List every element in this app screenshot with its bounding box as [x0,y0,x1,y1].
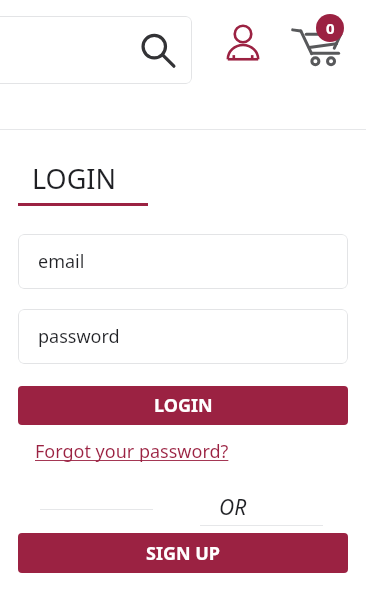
staticText: password [38,324,120,349]
button[interactable]: Account [220,22,266,68]
staticText: LOGIN [154,393,213,418]
button[interactable]: Forgot your password? [18,437,229,466]
staticText: 0 [326,18,335,38]
button[interactable]: SIGN UP [18,533,348,573]
button[interactable]: email [18,234,348,289]
button[interactable]: password [18,309,348,364]
staticText: OR [219,493,247,522]
button[interactable]: Search [0,16,192,84]
staticText: LOGIN [32,160,117,197]
staticText: SIGN UP [146,541,221,566]
button[interactable]: Cart [290,18,344,72]
button[interactable]: LOGIN [18,386,348,425]
staticText: Forgot your password? [35,439,229,464]
staticText: email [38,249,85,274]
